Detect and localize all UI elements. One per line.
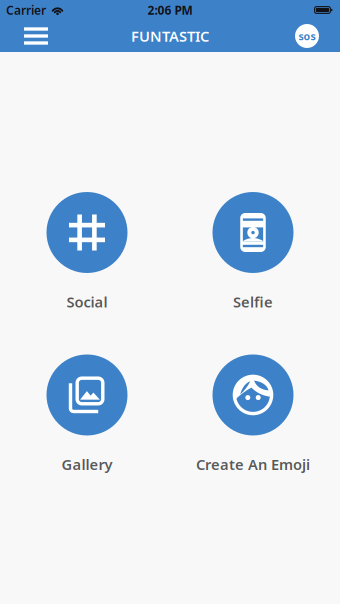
staticText: FUNTASTIC <box>131 26 209 46</box>
staticText: Selfie <box>233 292 273 311</box>
button[interactable]: Create An Emoji <box>177 354 329 474</box>
button[interactable]: Selfie <box>177 192 329 311</box>
button[interactable]: Open menu <box>14 20 58 52</box>
staticText: Create An Emoji <box>196 454 310 474</box>
staticText: Gallery <box>61 454 112 474</box>
button[interactable]: Social <box>11 192 163 311</box>
button[interactable]: Gallery <box>11 354 163 474</box>
staticText: Carrier <box>6 2 46 18</box>
staticText: Social <box>66 292 107 311</box>
button[interactable]: SOS <box>291 20 323 52</box>
staticText: sos <box>298 29 315 43</box>
staticText: 2:06 PM <box>147 2 192 18</box>
